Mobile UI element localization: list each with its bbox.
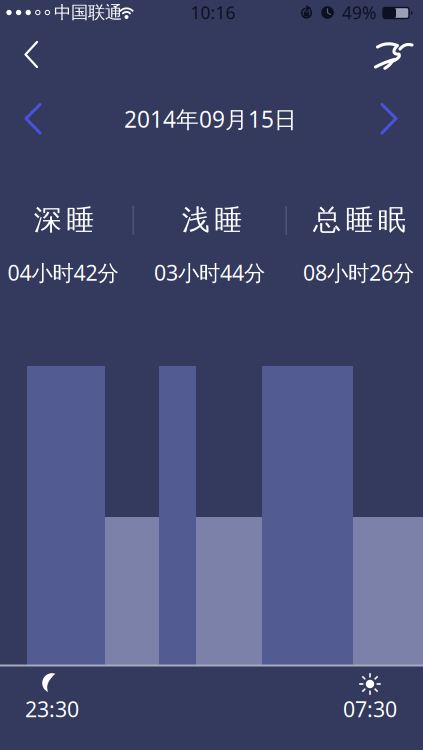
staticText: 中国联通: [54, 2, 122, 23]
staticText: 10:16: [190, 1, 235, 24]
staticText: 08小时26分: [303, 258, 414, 287]
button[interactable]: Previous day: [11, 96, 55, 140]
button[interactable]: Back: [9, 32, 53, 76]
staticText: 23:30: [25, 695, 79, 723]
button[interactable]: Next day: [367, 96, 411, 140]
staticText: 03小时44分: [154, 258, 265, 287]
staticText: 49%: [342, 1, 376, 24]
staticText: 07:30: [343, 695, 397, 723]
staticText: 总睡眠: [313, 203, 406, 237]
staticText: 浅睡: [182, 203, 242, 237]
staticText: 深睡: [34, 203, 94, 237]
button[interactable]: Runner: [370, 32, 420, 76]
staticText: 2014年09月15日: [124, 104, 297, 134]
staticText: 04小时42分: [7, 258, 118, 287]
